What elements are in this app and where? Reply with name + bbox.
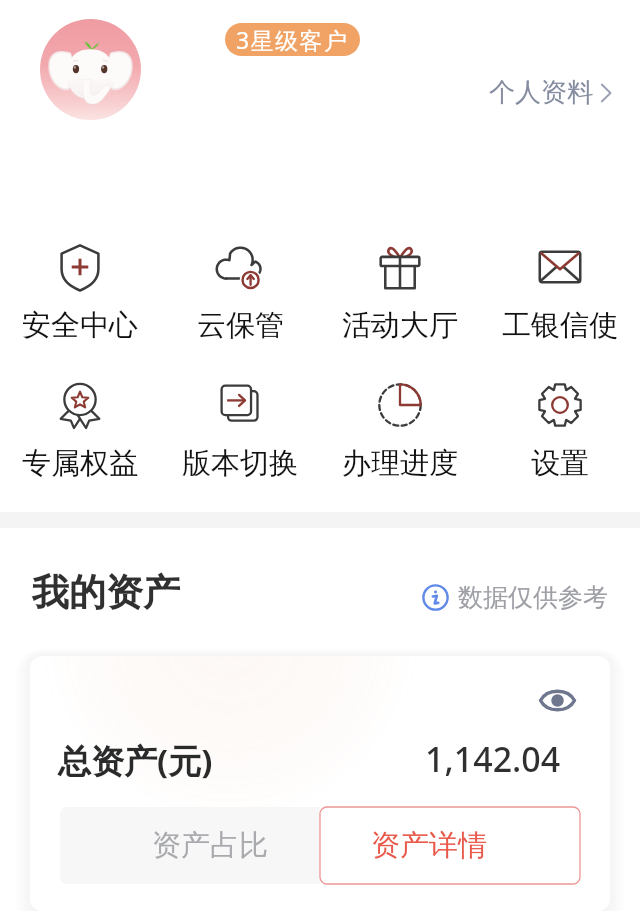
staticText: 数据仅供参考 bbox=[458, 582, 608, 613]
button[interactable]: 云保管 bbox=[164, 230, 316, 344]
button[interactable]: 专属权益 bbox=[4, 368, 156, 482]
staticText: 我的资产 bbox=[32, 569, 180, 616]
button[interactable]: 工银信使 bbox=[484, 230, 636, 344]
staticText: 资产占比 bbox=[152, 827, 268, 864]
button[interactable]: 资产详情 bbox=[320, 807, 580, 884]
button[interactable]: 活动大厅 bbox=[324, 230, 476, 344]
button[interactable]: 3星级客户 bbox=[225, 23, 360, 56]
staticText: 办理进度 bbox=[342, 445, 458, 482]
staticText: 云保管 bbox=[197, 307, 284, 344]
button[interactable]: 设置 bbox=[484, 368, 636, 482]
button[interactable]: 个人资料 bbox=[479, 70, 621, 115]
staticText: 安全中心 bbox=[22, 307, 138, 344]
staticText: 设置 bbox=[531, 445, 589, 482]
button[interactable]: Toggle balance visibility bbox=[535, 678, 579, 722]
button[interactable]: 安全中心 bbox=[4, 230, 156, 344]
button[interactable]: 版本切换 bbox=[164, 368, 316, 482]
button[interactable]: 办理进度 bbox=[324, 368, 476, 482]
staticText: 1,142.04 bbox=[425, 736, 561, 782]
staticText: 资产详情 bbox=[371, 827, 487, 864]
staticText: 工银信使 bbox=[502, 307, 618, 344]
staticText: 个人资料 bbox=[489, 76, 593, 109]
button[interactable]: 资产占比 bbox=[60, 807, 320, 884]
staticText: 活动大厅 bbox=[342, 307, 458, 344]
staticText: 总资产(元) bbox=[58, 738, 213, 783]
staticText: 版本切换 bbox=[182, 445, 298, 482]
button[interactable]: Profile avatar bbox=[40, 19, 141, 120]
staticText: 专属权益 bbox=[22, 445, 138, 482]
button[interactable]: 数据仅供参考 bbox=[420, 580, 610, 615]
staticText: 3星级客户 bbox=[236, 24, 349, 55]
